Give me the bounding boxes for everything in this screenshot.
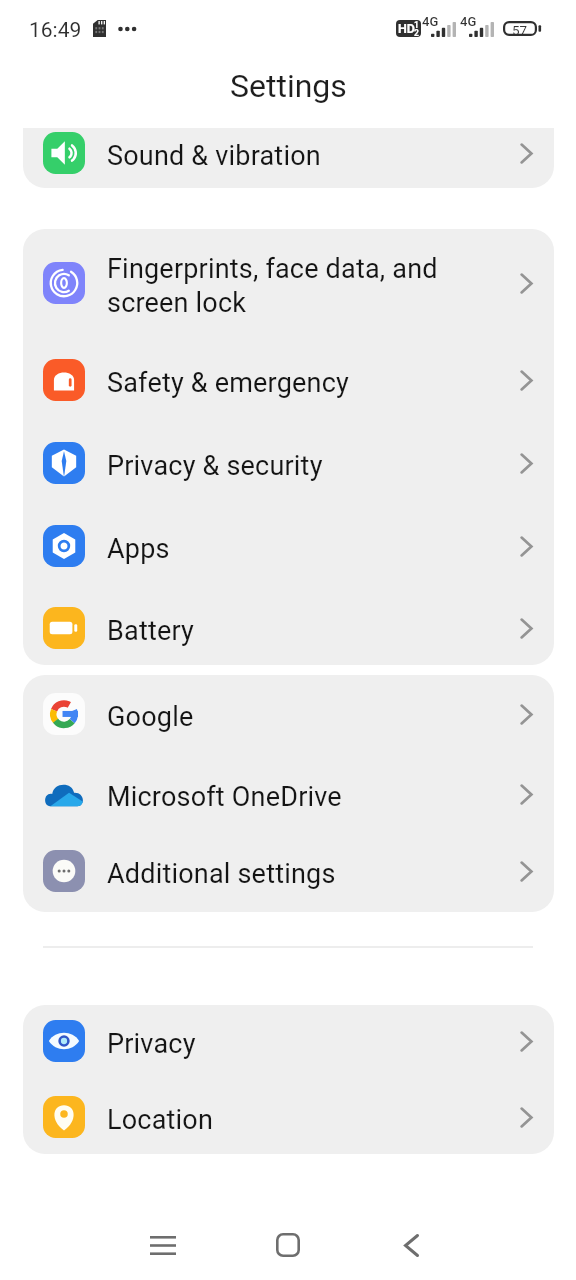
staticText: Privacy <box>107 1028 196 1060</box>
staticText: 16:49 <box>29 18 82 43</box>
staticText: Microsoft OneDrive <box>107 781 342 813</box>
staticText: Battery <box>107 615 195 647</box>
button[interactable]: Privacy & security <box>23 424 554 502</box>
staticText: Sound & vibration <box>107 140 321 172</box>
staticText: Additional settings <box>107 858 336 890</box>
staticText: 4G <box>422 14 439 29</box>
button[interactable]: Fingerprints, face data, and screen lock <box>23 244 554 322</box>
staticText: 57 <box>512 22 528 38</box>
button[interactable]: Apps <box>23 507 554 585</box>
button[interactable]: Sound & vibration <box>23 114 554 192</box>
staticText: 1 <box>414 20 419 30</box>
button[interactable]: Battery <box>23 589 554 667</box>
staticText: 4G <box>460 14 477 29</box>
button[interactable]: Back <box>366 1200 456 1280</box>
button[interactable]: Location <box>23 1078 554 1156</box>
staticText: Apps <box>107 533 170 565</box>
staticText: Privacy & security <box>107 450 323 482</box>
button[interactable]: Recent apps <box>118 1200 208 1280</box>
staticText: Settings <box>230 67 347 105</box>
staticText: 2 <box>414 28 419 38</box>
staticText: HD <box>398 21 415 36</box>
button[interactable]: Microsoft OneDrive <box>23 755 554 833</box>
button[interactable]: Home <box>243 1200 333 1280</box>
staticText: Google <box>107 701 194 733</box>
staticText: Fingerprints, face data, and screen lock <box>107 253 438 319</box>
button[interactable]: Google <box>23 675 554 753</box>
button[interactable]: Safety & emergency <box>23 341 554 419</box>
staticText: Location <box>107 1104 214 1136</box>
staticText: Safety & emergency <box>107 367 350 399</box>
button[interactable]: Additional settings <box>23 832 554 910</box>
button[interactable]: Privacy <box>23 1002 554 1080</box>
